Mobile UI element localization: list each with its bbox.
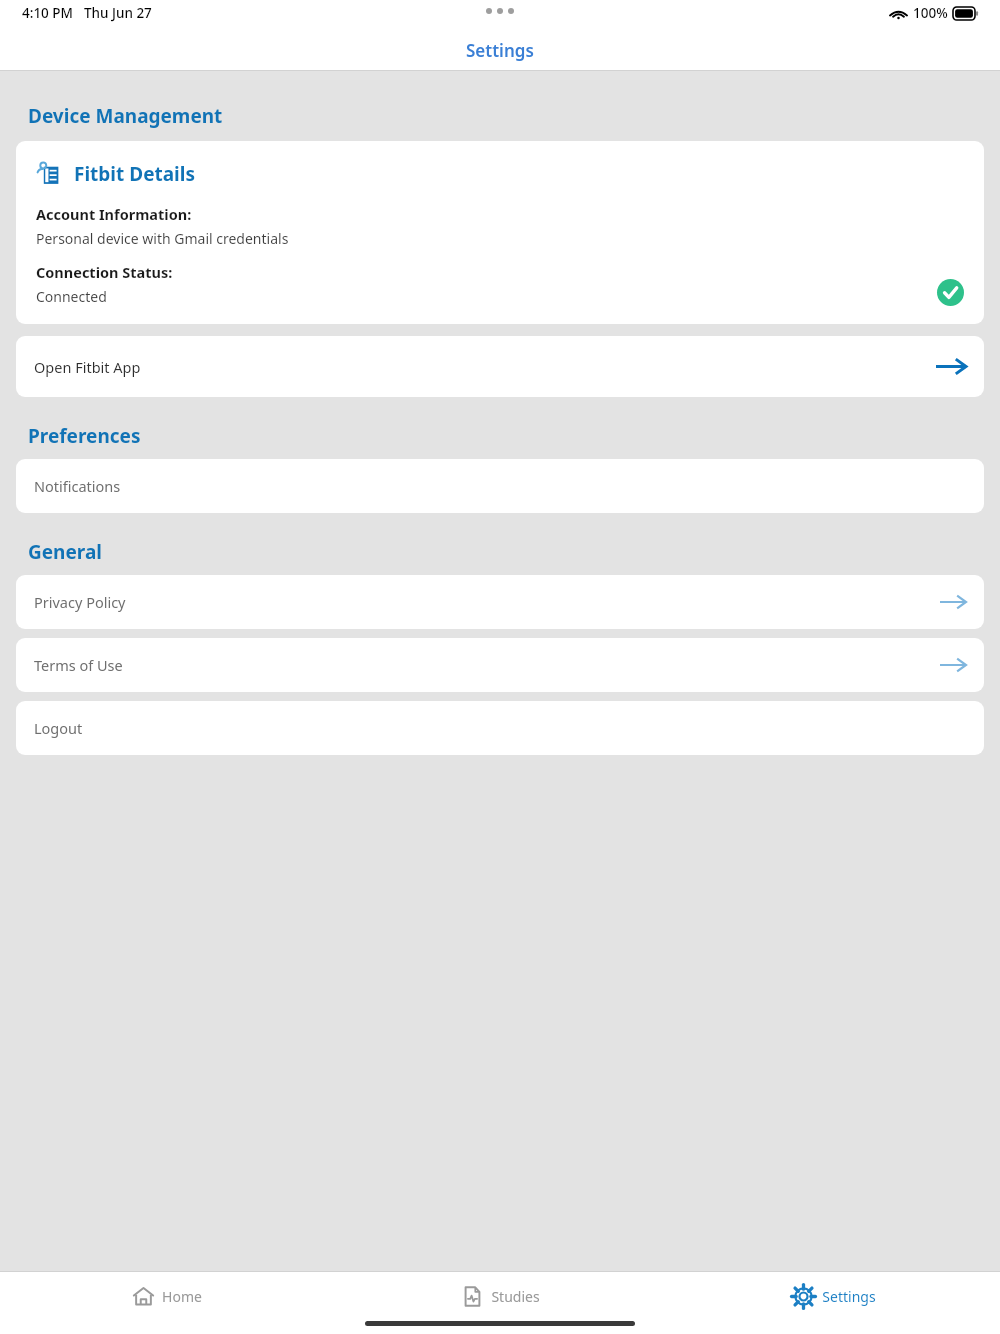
- staticText: Connection Status:: [36, 262, 173, 282]
- button[interactable]: Open Fitbit App: [16, 336, 984, 397]
- staticText: Home: [162, 1287, 202, 1306]
- button[interactable]: Logout: [16, 701, 984, 755]
- button[interactable]: Settings: [667, 1271, 1000, 1321]
- staticText: Studies: [491, 1287, 540, 1306]
- button[interactable]: Studies: [334, 1271, 667, 1321]
- staticText: 100%: [913, 4, 948, 22]
- staticText: Connected: [36, 287, 107, 306]
- staticText: Privacy Policy: [34, 592, 126, 612]
- staticText: Personal device with Gmail credentials: [36, 229, 289, 248]
- staticText: Open Fitbit App: [34, 357, 141, 377]
- staticText: Account Information:: [36, 204, 192, 224]
- button[interactable]: Notifications: [16, 459, 984, 513]
- staticText: Logout: [34, 718, 83, 738]
- staticText: General: [28, 539, 102, 565]
- staticText: Settings: [466, 39, 534, 62]
- button[interactable]: Terms of Use: [16, 638, 984, 692]
- staticText: Settings: [822, 1287, 876, 1306]
- staticText: 4:10 PM: [22, 4, 73, 22]
- staticText: Fitbit Details: [74, 161, 195, 187]
- staticText: Notifications: [34, 476, 121, 496]
- staticText: Device Management: [28, 103, 223, 129]
- staticText: Preferences: [28, 423, 141, 449]
- other: Connected: [937, 279, 964, 306]
- staticText: Thu Jun 27: [84, 4, 152, 22]
- staticText: Terms of Use: [34, 655, 123, 675]
- button[interactable]: Home: [0, 1271, 334, 1321]
- button[interactable]: Privacy Policy: [16, 575, 984, 629]
